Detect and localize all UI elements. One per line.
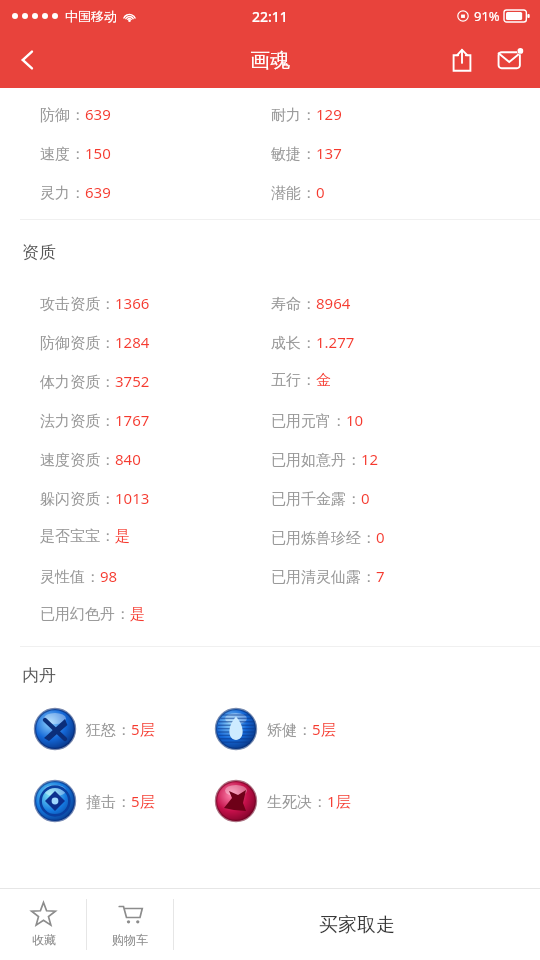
button[interactable]: Back <box>0 32 56 88</box>
staticText: 成长：1.277 <box>271 332 355 352</box>
staticText: 内丹 <box>22 665 56 686</box>
staticText: 22:11 <box>252 7 288 26</box>
staticText: 敏捷：137 <box>271 143 342 163</box>
staticText: 已用炼兽珍经：0 <box>271 527 385 547</box>
staticText: 灵力：639 <box>40 182 111 202</box>
staticText: 买家取走 <box>319 913 395 937</box>
staticText: 寿命：8964 <box>271 293 351 313</box>
staticText: 躲闪资质：1013 <box>40 488 150 508</box>
staticText: 矫健：5层 <box>267 719 336 739</box>
staticText: 购物车 <box>112 932 148 947</box>
staticText: 法力资质：1767 <box>40 410 150 430</box>
staticText: 攻击资质：1366 <box>40 293 150 313</box>
staticText: 91% <box>474 7 500 25</box>
button[interactable]: 矫健：5层 <box>215 708 336 750</box>
staticText: 防御：639 <box>40 104 111 124</box>
button[interactable]: 狂怒：5层 <box>34 708 155 750</box>
staticText: 已用千金露：0 <box>271 488 370 508</box>
staticText: 已用元宵：10 <box>271 410 364 430</box>
staticText: 灵性值：98 <box>40 566 118 586</box>
staticText: 耐力：129 <box>271 104 342 124</box>
staticText: 速度：150 <box>40 143 111 163</box>
button[interactable]: 买家取走 <box>174 889 540 960</box>
staticText: 资质 <box>22 242 56 263</box>
staticText: 五行：金 <box>271 371 331 390</box>
staticText: 已用幻色丹：是 <box>40 605 145 624</box>
staticText: 已用如意丹：12 <box>271 449 379 469</box>
button[interactable]: Share <box>436 34 488 86</box>
button[interactable]: 购物车 <box>87 889 173 960</box>
staticText: 中国移动 <box>65 8 117 24</box>
button[interactable]: 生死决：1层 <box>215 780 351 822</box>
staticText: 收藏 <box>32 932 56 947</box>
staticText: 防御资质：1284 <box>40 332 150 352</box>
staticText: 速度资质：840 <box>40 449 141 469</box>
button[interactable]: 收藏 <box>0 889 86 960</box>
button[interactable]: 撞击：5层 <box>34 780 155 822</box>
staticText: 潜能：0 <box>271 182 325 202</box>
staticText: 体力资质：3752 <box>40 371 150 391</box>
button[interactable]: Messages <box>488 34 532 86</box>
staticText: 撞击：5层 <box>86 791 155 811</box>
staticText: 画魂 <box>250 48 290 73</box>
staticText: 是否宝宝：是 <box>40 527 130 546</box>
staticText: 狂怒：5层 <box>86 719 155 739</box>
staticText: 已用清灵仙露：7 <box>271 566 385 586</box>
staticText: 生死决：1层 <box>267 791 351 811</box>
